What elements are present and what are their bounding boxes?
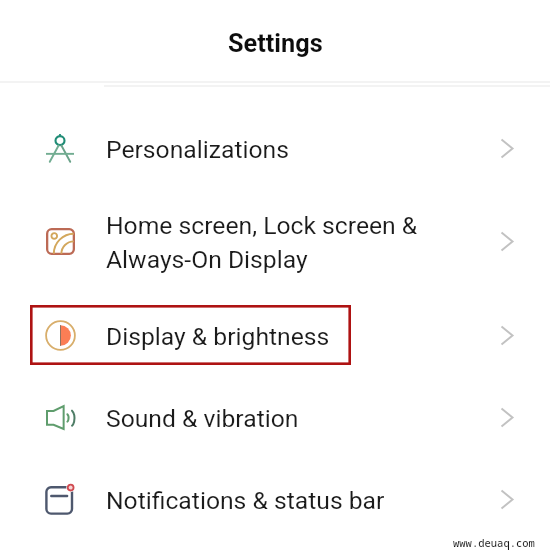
other: Open [464, 458, 550, 540]
button[interactable]: Notifications & status bar [0, 458, 550, 540]
staticText: Display & brightness [106, 322, 330, 351]
staticText: www.deuaq.com [453, 536, 535, 550]
button[interactable]: Display & brightness [0, 294, 550, 376]
button[interactable]: Sound & vibration [0, 376, 550, 458]
staticText: Home screen, Lock screen & Always-On Dis… [106, 211, 418, 274]
button[interactable]: Home screen, Lock screen & Always-On Dis… [0, 189, 550, 294]
staticText: Settings [228, 29, 323, 59]
other: Open [464, 107, 550, 189]
other: Open [464, 294, 550, 376]
other: Open [464, 376, 550, 458]
staticText: Sound & vibration [106, 404, 299, 433]
button[interactable]: Personalizations [0, 107, 550, 189]
staticText: Personalizations [106, 135, 289, 164]
other: Open [464, 189, 550, 294]
staticText: Notifications & status bar [106, 486, 385, 515]
